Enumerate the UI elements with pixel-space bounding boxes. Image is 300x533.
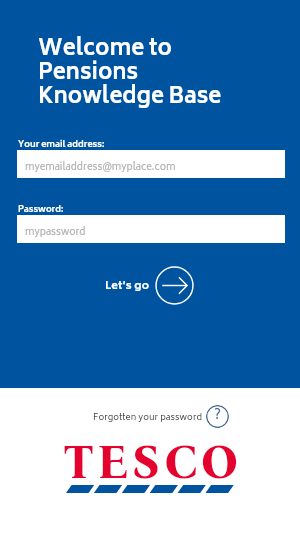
button[interactable]: mypassword <box>17 215 285 243</box>
staticText: ? <box>214 405 221 428</box>
staticText: Forgotten your password <box>93 410 203 425</box>
button[interactable]: Let's go <box>104 265 195 304</box>
button[interactable]: Forgotten your password <box>92 404 231 428</box>
staticText: mypassword <box>25 224 86 241</box>
button[interactable]: myemailaddress@myplace.com <box>17 150 285 178</box>
staticText: TESCO <box>63 432 243 491</box>
staticText: myemailaddress@myplace.com <box>25 159 176 176</box>
staticText: Let's go <box>105 277 150 296</box>
other: Let's go <box>155 266 194 305</box>
staticText: Your email address: <box>18 137 105 152</box>
staticText: Welcome to Pensions Knowledge Base <box>38 31 222 117</box>
staticText: Password: <box>18 202 64 217</box>
